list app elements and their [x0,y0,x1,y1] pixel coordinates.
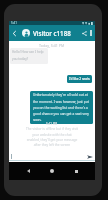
staticText: Visitor c1188 [33,29,71,37]
button[interactable]: Send [86,153,94,161]
button[interactable]: Unfortunately they're all sold out at th… [30,91,93,124]
button[interactable]: Hello! How can I help you today? [10,48,48,64]
button[interactable]: More options [87,25,95,41]
button[interactable]: Back [21,164,35,178]
staticText: Hello! How can I help you today? [12,50,46,61]
button[interactable]: Send [9,152,95,162]
button[interactable]: I'd like 2 seats [67,75,92,83]
button[interactable]: Recents [69,164,83,178]
staticText: The visitor is offline but if they visit… [26,127,78,147]
staticText: 5:41 PM [46,122,58,126]
staticText: 5:41 [11,21,17,25]
button[interactable]: Home [45,164,59,178]
staticText: Today, 5:41 PM [39,43,65,48]
staticText: Unfortunately they're all sold out at th… [33,93,90,122]
button[interactable]: Share [80,25,89,41]
staticText: I'd like 2 seats [69,77,90,81]
button[interactable]: Back [9,25,20,41]
